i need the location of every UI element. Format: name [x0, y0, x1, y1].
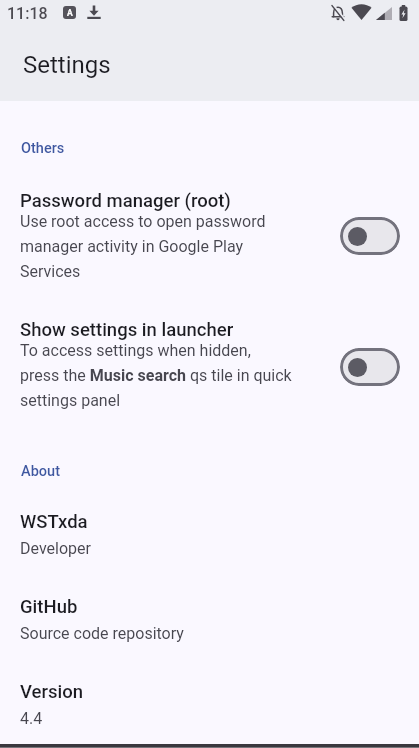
staticText: Source code repository: [20, 624, 184, 643]
staticText: 4.4: [20, 709, 43, 728]
staticText: Version: [20, 681, 84, 703]
button[interactable]: Show settings in launcher: [0, 302, 419, 427]
staticText: Password manager (root): [20, 190, 231, 212]
staticText: Use root access to open password manager…: [20, 212, 266, 281]
staticText: GitHub: [20, 596, 78, 618]
staticText: About: [21, 463, 60, 480]
staticText: WSTxda: [20, 511, 88, 533]
button[interactable]: WSTxda: [0, 491, 419, 576]
button[interactable]: Password manager (root): [0, 173, 419, 298]
button[interactable]: Version: [0, 661, 419, 746]
staticText: A: [67, 8, 73, 18]
button[interactable]: GitHub: [0, 576, 419, 661]
staticText: Developer: [20, 539, 91, 558]
staticText: Show settings in launcher: [20, 319, 234, 341]
staticText: Settings: [23, 51, 111, 79]
staticText: Others: [21, 140, 65, 157]
staticText: To access settings when hidden, press th…: [20, 341, 292, 410]
staticText: 11:18: [7, 4, 48, 23]
